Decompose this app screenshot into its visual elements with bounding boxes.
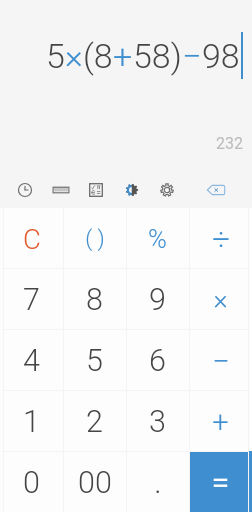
button[interactable]: 2: [63, 390, 126, 451]
staticText: (8: [83, 36, 113, 76]
staticText: 00: [78, 465, 112, 501]
button[interactable]: Backspace: [202, 176, 230, 204]
staticText: 1: [23, 404, 40, 440]
staticText: −: [212, 343, 230, 379]
staticText: %: [148, 224, 167, 254]
staticText: 5: [46, 36, 65, 76]
staticText: 232: [216, 134, 243, 153]
staticText: +: [113, 36, 133, 76]
staticText: 7: [23, 282, 40, 318]
button[interactable]: ( ): [63, 208, 126, 268]
button[interactable]: Unit converter: [47, 176, 75, 204]
staticText: 8: [86, 282, 103, 318]
button[interactable]: ×: [189, 268, 252, 329]
button[interactable]: 9: [126, 268, 189, 329]
staticText: 6: [149, 343, 166, 379]
staticText: ÷: [212, 221, 230, 257]
staticText: +: [212, 405, 229, 439]
button[interactable]: C: [0, 208, 63, 268]
button[interactable]: Theme: [118, 176, 146, 204]
button[interactable]: 1: [0, 390, 63, 451]
button[interactable]: Scientific calculator: [82, 176, 110, 204]
button[interactable]: ÷: [189, 208, 252, 268]
staticText: ×: [65, 36, 83, 76]
button[interactable]: .: [126, 451, 189, 512]
button[interactable]: 3: [126, 390, 189, 451]
staticText: 5: [86, 343, 103, 379]
button[interactable]: 4: [0, 329, 63, 390]
staticText: −: [182, 36, 202, 76]
button[interactable]: 8: [63, 268, 126, 329]
staticText: 3: [149, 404, 166, 440]
staticText: 98: [202, 36, 240, 76]
staticText: ×: [213, 284, 228, 316]
button[interactable]: Settings: [153, 176, 181, 204]
button[interactable]: 7: [0, 268, 63, 329]
button[interactable]: 5: [63, 329, 126, 390]
button[interactable]: History: [11, 176, 39, 204]
staticText: .: [154, 465, 162, 501]
staticText: 4: [23, 343, 40, 379]
button[interactable]: %: [126, 208, 189, 268]
staticText: 0: [23, 465, 40, 501]
button[interactable]: 00: [63, 451, 126, 512]
staticText: 58): [133, 36, 182, 76]
staticText: ( ): [85, 226, 105, 252]
button[interactable]: 6: [126, 329, 189, 390]
staticText: 2: [86, 404, 103, 440]
button[interactable]: −: [189, 329, 252, 390]
button[interactable]: Equals: [189, 451, 252, 512]
staticText: C: [23, 223, 41, 255]
button[interactable]: +: [189, 390, 252, 451]
button[interactable]: 0: [0, 451, 63, 512]
staticText: 9: [149, 282, 166, 318]
